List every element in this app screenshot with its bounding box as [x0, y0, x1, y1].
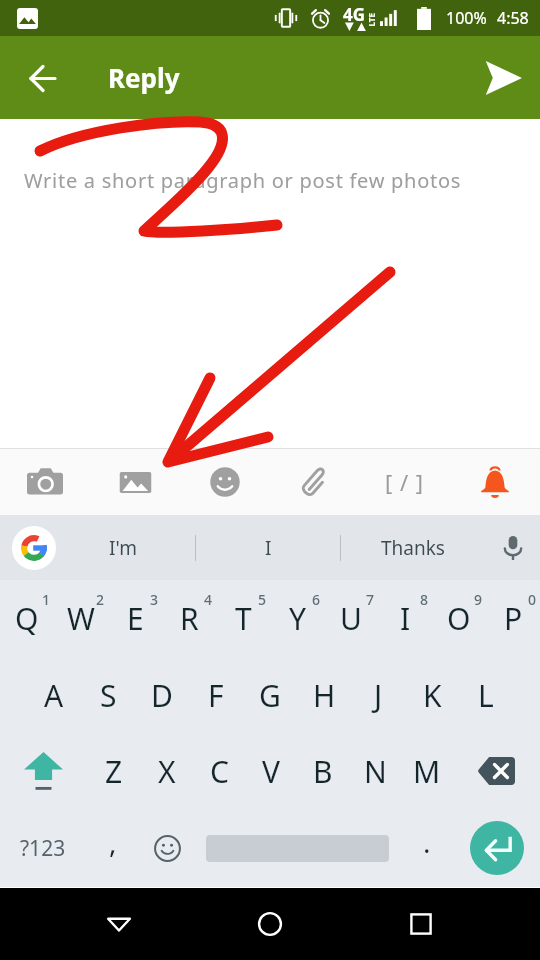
staticText: 7 [366, 590, 375, 609]
button[interactable]: Comma [86, 809, 140, 887]
staticText: I [400, 598, 411, 639]
staticText: [ / ] [385, 467, 425, 497]
button[interactable]: I [196, 515, 340, 580]
button[interactable]: Z [87, 733, 140, 809]
staticText: Q [15, 598, 39, 639]
button[interactable]: T [216, 580, 270, 657]
staticText: G [259, 675, 281, 716]
button[interactable]: C [193, 733, 245, 809]
staticText: I'm [109, 535, 137, 561]
button[interactable]: I'm [50, 515, 195, 580]
button[interactable]: Recents [389, 892, 453, 956]
staticText: N [364, 751, 387, 792]
staticText: A [44, 675, 64, 716]
staticText: Write a short paragraph or post few phot… [24, 167, 462, 194]
staticText: 3 [150, 590, 159, 609]
button[interactable]: Q [0, 580, 54, 657]
staticText: U [340, 598, 362, 639]
button[interactable]: I [378, 580, 432, 657]
staticText: 0 [528, 590, 537, 609]
staticText: 4:58 [497, 7, 529, 29]
staticText: O [447, 598, 471, 639]
button[interactable]: Code [360, 449, 450, 515]
staticText: Z [105, 751, 123, 792]
button[interactable]: Back [18, 54, 66, 102]
button[interactable]: H [297, 657, 351, 733]
button[interactable]: V [245, 733, 297, 809]
staticText: R [180, 598, 199, 639]
button[interactable]: M [401, 733, 453, 809]
staticText: 8 [420, 590, 429, 609]
button[interactable]: W [54, 580, 108, 657]
staticText: M [413, 751, 441, 792]
button[interactable]: E [108, 580, 162, 657]
button[interactable]: Shift [0, 733, 87, 809]
button[interactable]: X [140, 733, 193, 809]
button[interactable]: P [486, 580, 540, 657]
staticText: Reply [108, 60, 180, 95]
staticText: 4G [343, 3, 366, 26]
staticText: 6 [312, 590, 321, 609]
button[interactable]: Emoji [140, 809, 194, 887]
button[interactable]: Send [479, 54, 527, 102]
staticText: P [504, 598, 523, 639]
button[interactable]: A [27, 657, 81, 733]
button[interactable]: F [189, 657, 243, 733]
button[interactable]: Thanks [341, 515, 485, 580]
button[interactable]: Home [238, 892, 302, 956]
button[interactable]: Camera [0, 449, 90, 515]
button[interactable]: Y [270, 580, 324, 657]
staticText: V [262, 751, 280, 792]
button[interactable]: S [81, 657, 135, 733]
button[interactable]: N [349, 733, 401, 809]
button[interactable]: Google [12, 526, 56, 570]
button[interactable]: G [243, 657, 297, 733]
button[interactable]: J [351, 657, 405, 733]
button[interactable]: Photos [90, 449, 180, 515]
button[interactable]: K [405, 657, 459, 733]
staticText: , [109, 823, 117, 861]
staticText: L [478, 675, 494, 716]
staticText: I [265, 535, 272, 561]
staticText: X [158, 751, 176, 792]
staticText: F [208, 675, 224, 716]
staticText: D [151, 675, 173, 716]
staticText: LTE [365, 12, 376, 26]
button[interactable]: R [162, 580, 216, 657]
staticText: . [423, 823, 431, 861]
staticText: 9 [474, 590, 483, 609]
staticText: 5 [258, 590, 267, 609]
staticText: H [313, 675, 336, 716]
button[interactable]: Space [194, 809, 400, 887]
button[interactable]: L [459, 657, 513, 733]
button[interactable]: ?123 [0, 809, 86, 887]
button[interactable]: Reminder [450, 449, 540, 515]
staticText: Thanks [381, 535, 445, 561]
button[interactable]: B [297, 733, 349, 809]
button[interactable]: Backspace [453, 733, 540, 809]
staticText: S [100, 675, 117, 716]
staticText: 1 [42, 590, 51, 609]
button[interactable]: D [135, 657, 189, 733]
button[interactable]: O [432, 580, 486, 657]
button[interactable]: Emoji [180, 449, 270, 515]
staticText: T [235, 598, 252, 639]
staticText: W [67, 598, 95, 639]
staticText: 2 [96, 590, 105, 609]
staticText: 100% [446, 7, 487, 29]
button[interactable]: Voice input [485, 515, 540, 580]
button[interactable]: U [324, 580, 378, 657]
staticText: K [423, 675, 442, 716]
staticText: C [210, 751, 229, 792]
button[interactable]: Back [87, 892, 151, 956]
button[interactable]: Attach file [270, 449, 360, 515]
staticText: Y [289, 598, 306, 639]
staticText: ?123 [20, 834, 66, 863]
staticText: E [127, 598, 144, 639]
button[interactable]: Period [400, 809, 454, 887]
staticText: 4 [204, 590, 213, 609]
button[interactable]: Enter [454, 809, 540, 887]
staticText: B [313, 751, 333, 792]
staticText: J [374, 675, 383, 716]
